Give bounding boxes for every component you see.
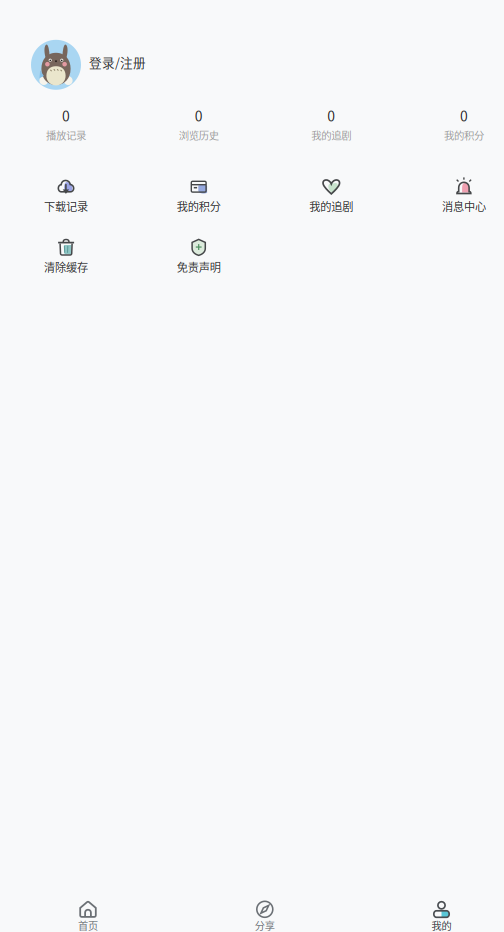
button[interactable]: 0 [11,101,121,149]
button[interactable]: 0 [276,101,386,149]
button[interactable]: 首页 [28,898,148,932]
staticText: 免责声明 [177,259,221,275]
button[interactable]: 0 [409,101,504,149]
button[interactable]: 我的积分 [144,173,254,219]
staticText: 我的积分 [444,127,484,143]
staticText: 首页 [78,918,98,932]
button[interactable]: 下载记录 [11,173,121,219]
staticText: 浏览历史 [179,127,219,143]
staticText: 清除缓存 [44,259,88,275]
staticText: 0 [62,105,70,126]
staticText: 分享 [255,918,275,932]
button[interactable]: 免责声明 [144,234,254,280]
staticText: 0 [460,105,468,126]
button[interactable]: 登录/注册 [31,40,176,90]
button[interactable]: 0 [144,101,254,149]
staticText: 消息中心 [442,198,486,214]
staticText: 我的积分 [177,198,221,214]
button[interactable]: 消息中心 [409,173,504,219]
staticText: 0 [327,105,335,126]
staticText: 下载记录 [44,198,88,214]
staticText: 播放记录 [46,127,86,143]
staticText: 我的追剧 [309,198,353,214]
button[interactable]: 清除缓存 [11,234,121,280]
button[interactable]: 我的追剧 [276,173,386,219]
button[interactable]: 分享 [205,898,325,932]
staticText: 登录/注册 [89,53,146,71]
button[interactable]: 我的 [381,898,501,932]
staticText: 0 [195,105,203,126]
staticText: 我的追剧 [311,127,351,143]
staticText: 我的 [431,918,451,932]
